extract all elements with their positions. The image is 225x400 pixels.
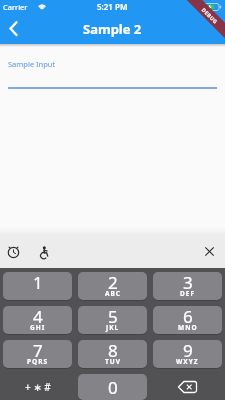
button[interactable]: 3 [153, 272, 222, 301]
staticText: MNO [178, 323, 198, 332]
staticText: Sample 2 [83, 20, 142, 38]
button[interactable]: 9 [153, 340, 222, 369]
staticText: TUV [105, 357, 121, 366]
staticText: 6 [183, 306, 193, 328]
staticText: Sample Input [8, 59, 56, 69]
staticText: WXYZ [176, 357, 199, 366]
staticText: GHI [30, 323, 46, 332]
button[interactable]: 8 [78, 340, 147, 369]
button[interactable] [4, 242, 24, 262]
button[interactable]: + ∗ # [3, 374, 72, 400]
button[interactable]: 1 [3, 272, 72, 301]
staticText: Carrier [3, 2, 28, 12]
staticText: 9 [183, 340, 193, 362]
staticText: DEF [180, 289, 195, 298]
staticText: 5 [108, 306, 118, 328]
staticText: PQRS [27, 357, 49, 366]
button[interactable]: 6 [153, 306, 222, 335]
staticText: 0 [108, 376, 118, 399]
staticText: 2 [108, 272, 118, 294]
staticText: DEBUG [200, 6, 220, 25]
staticText: 7 [33, 340, 43, 362]
staticText: JKL [106, 323, 120, 332]
button[interactable] [34, 242, 54, 262]
staticText: 5:21 PM [97, 1, 128, 12]
staticText: + ∗ # [25, 380, 51, 394]
button[interactable]: 2 [78, 272, 147, 301]
button[interactable]: 7 [3, 340, 72, 369]
staticText: ABC [105, 289, 121, 298]
button[interactable] [153, 374, 222, 400]
staticText: 1 [33, 272, 43, 294]
staticText: 8 [108, 340, 118, 362]
button[interactable] [199, 241, 220, 262]
button[interactable]: 4 [3, 306, 72, 335]
button[interactable]: 0 [78, 374, 147, 400]
button[interactable]: 5 [78, 306, 147, 335]
staticText: 3 [183, 272, 193, 294]
staticText: 4 [33, 306, 43, 328]
button[interactable] [2, 20, 28, 38]
